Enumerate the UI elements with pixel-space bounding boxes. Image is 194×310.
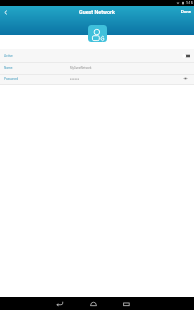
- staticText: Active: [4, 54, 13, 58]
- staticText: Password: [4, 77, 19, 81]
- button[interactable]: Back: [55, 299, 64, 308]
- staticText: 1:15: [186, 1, 193, 5]
- staticText: Name: [4, 66, 13, 70]
- button[interactable]: Show password: [183, 77, 188, 80]
- button[interactable]: Done: [183, 6, 194, 11]
- button[interactable]: Active toggle: [182, 54, 190, 58]
- button[interactable]: Password: [0, 74, 194, 84]
- button[interactable]: Name: [0, 62, 194, 73]
- staticText: Guest Network: [79, 9, 115, 15]
- staticText: MyGuestNetwork: [70, 66, 92, 69]
- button[interactable]: Back: [1, 8, 10, 17]
- button[interactable]: Recent apps: [122, 299, 131, 308]
- button[interactable]: Active: [0, 49, 194, 62]
- button[interactable]: Guest user: [88, 25, 107, 42]
- button[interactable]: Home: [89, 299, 98, 308]
